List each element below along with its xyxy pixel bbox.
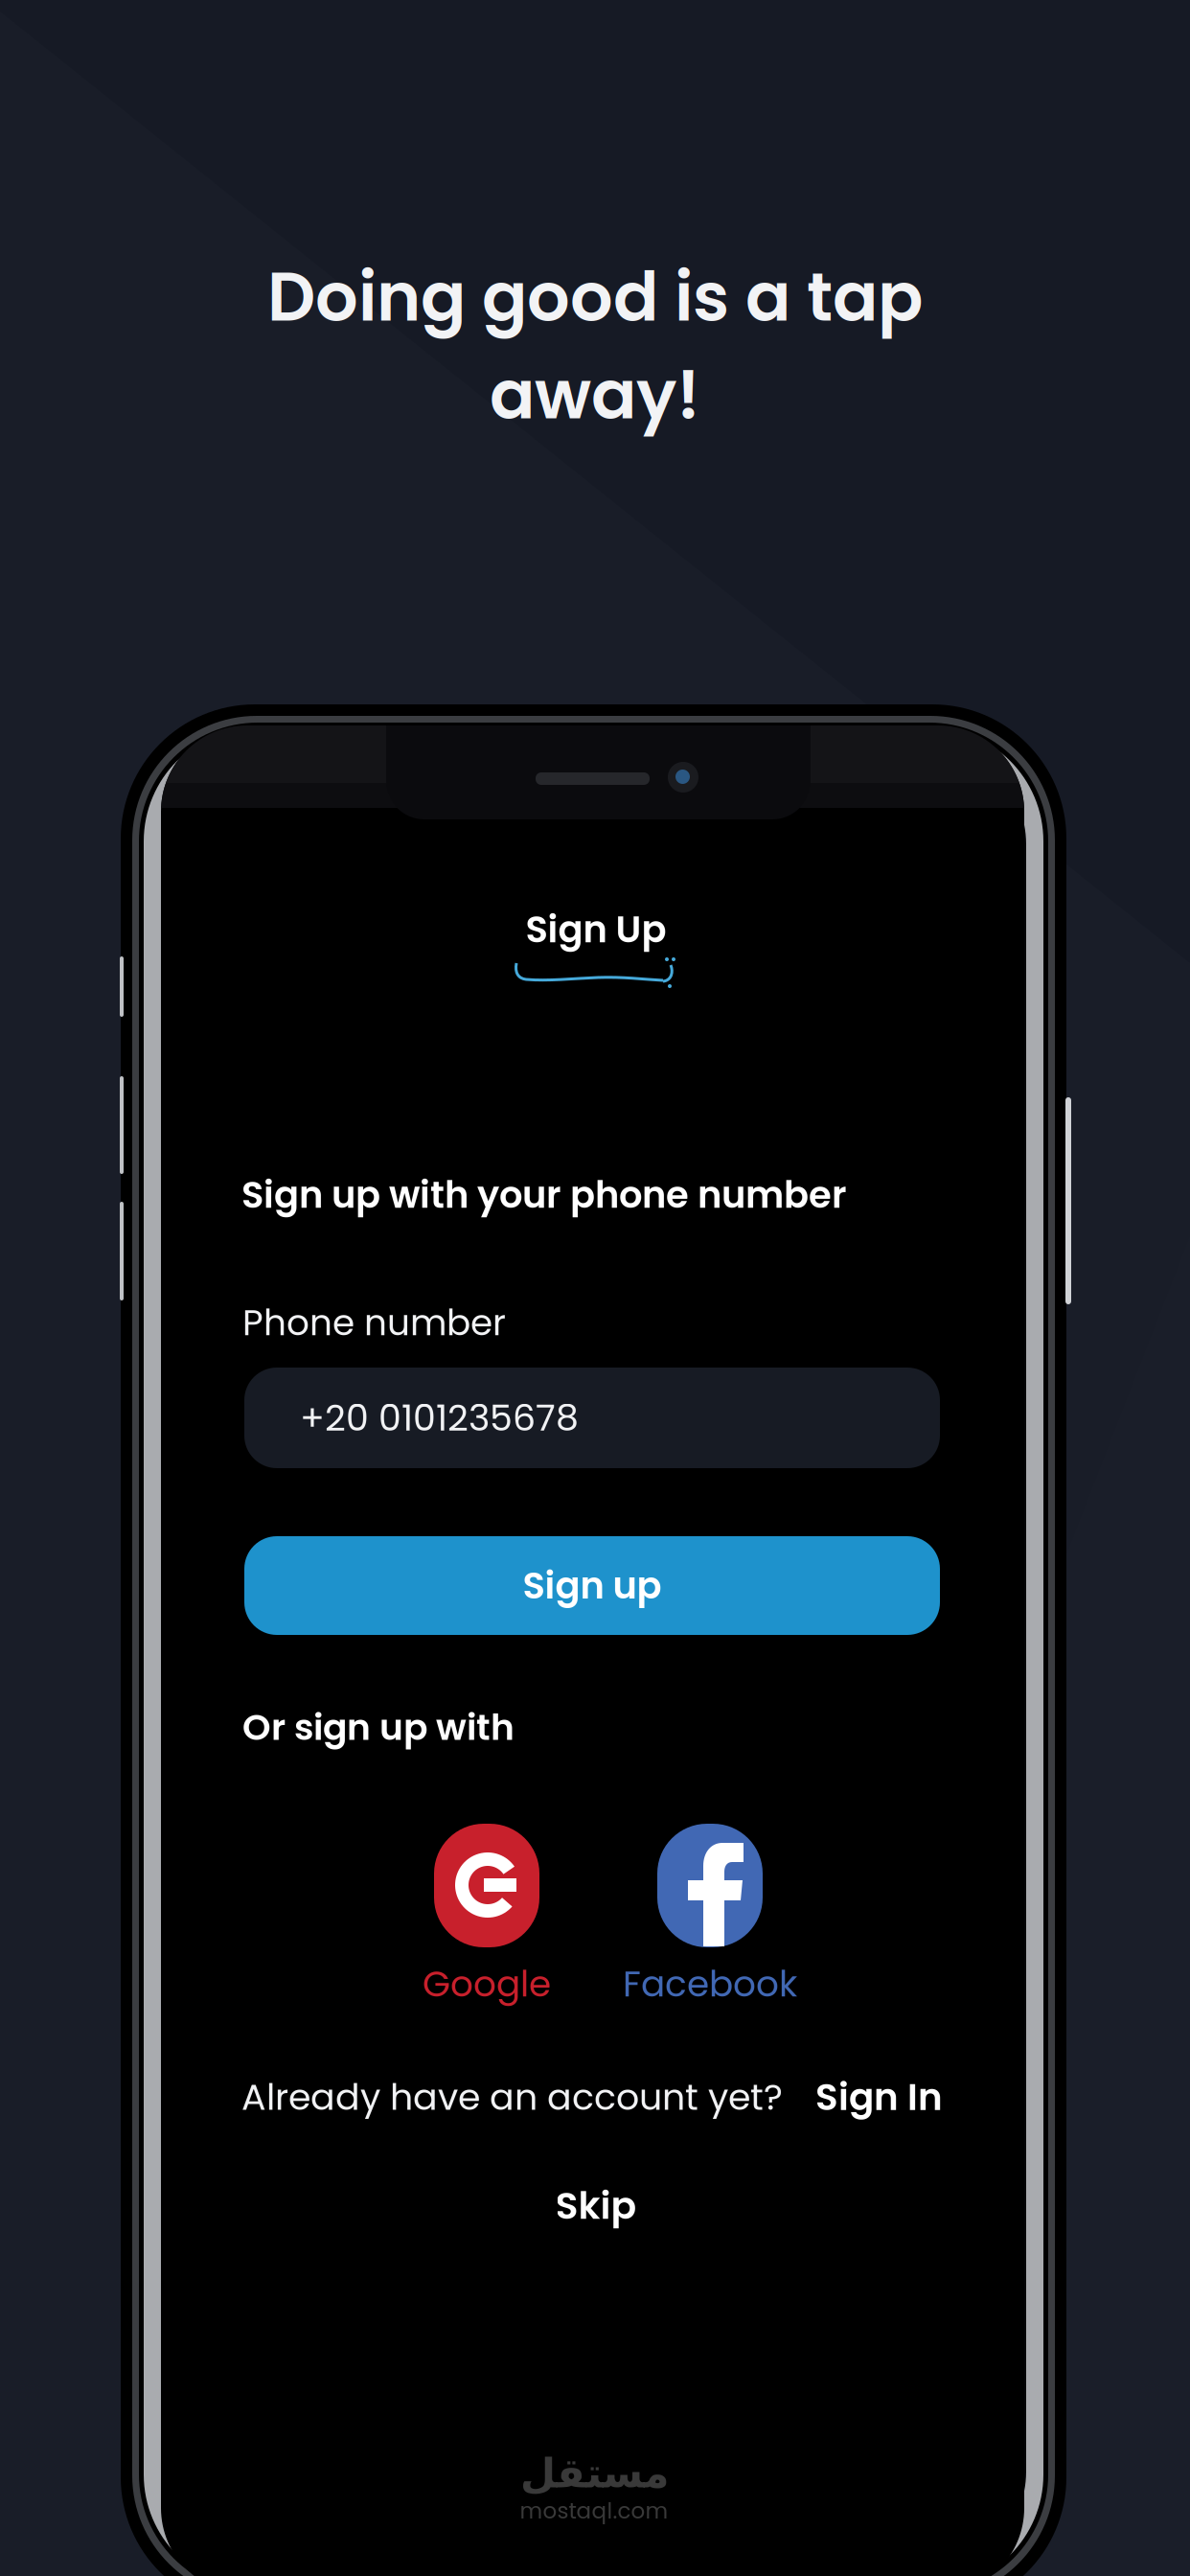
button[interactable]: Sign up with Facebook [657, 1824, 763, 1947]
staticText: mostaql.com [520, 2495, 668, 2526]
staticText: Facebook [623, 1959, 797, 2009]
button[interactable]: +20 0101235678 [244, 1368, 940, 1468]
button[interactable]: Sign up with Google [434, 1824, 539, 1947]
staticText: +20 0101235678 [300, 1392, 579, 1443]
button[interactable]: Skip [500, 2179, 692, 2232]
staticText: مستقل [520, 2449, 668, 2497]
staticText: Sign Up [526, 904, 666, 955]
staticText: Sign In [815, 2071, 943, 2123]
staticText: Already have an account yet? [241, 2072, 783, 2122]
staticText: Skip [555, 2179, 637, 2232]
button[interactable]: Sign In [815, 2071, 943, 2123]
staticText: Or sign up with [242, 1702, 515, 1752]
staticText: Sign up [523, 1560, 662, 1611]
staticText: Sign up with your phone number [241, 1169, 847, 1221]
staticText: away! [490, 348, 700, 442]
staticText: Google [423, 1959, 551, 2009]
staticText: Phone number [242, 1298, 506, 1348]
staticText: Doing good is a tap [267, 250, 923, 344]
button[interactable]: Sign up [244, 1536, 940, 1635]
